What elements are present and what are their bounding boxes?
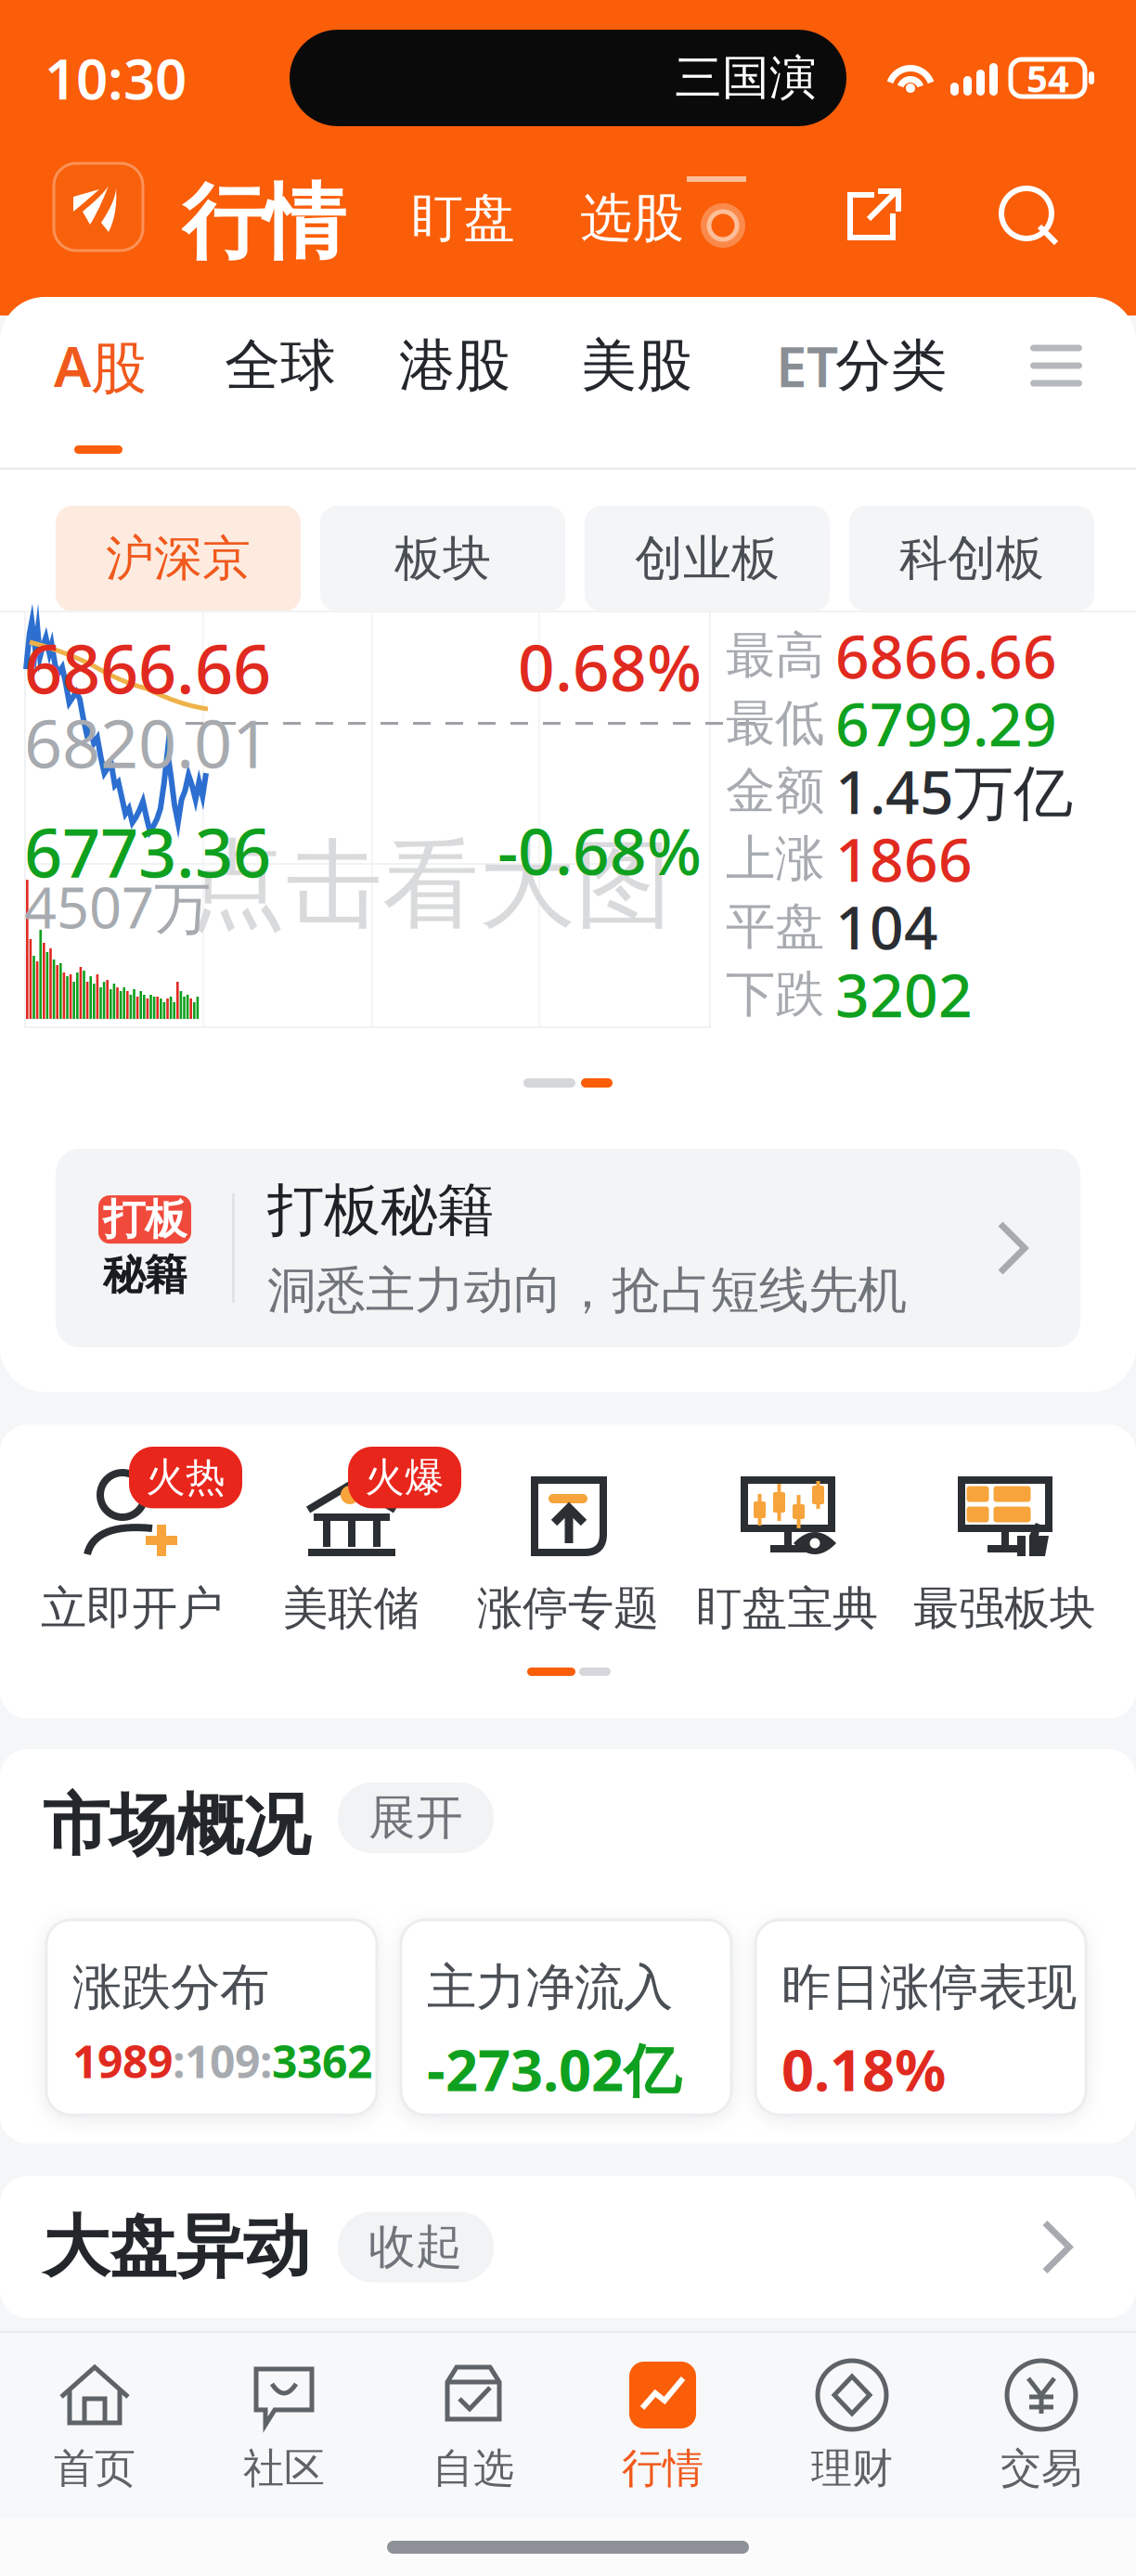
button[interactable]: 昨日涨停表现 [755, 1920, 1086, 2115]
button[interactable]: Share [841, 184, 908, 251]
button[interactable]: Search [995, 182, 1067, 254]
button[interactable]: 展开 [338, 1783, 494, 1853]
button[interactable]: 创业板 [585, 506, 830, 612]
staticText: 首页 [54, 2443, 136, 2493]
button[interactable]: 东方财富 [54, 163, 143, 251]
button[interactable]: 涨停专题 [461, 1463, 675, 1649]
staticText: 打板 [103, 1194, 187, 1245]
button[interactable]: 社区 [189, 2333, 379, 2518]
button[interactable]: 火爆 [244, 1463, 458, 1649]
button[interactable]: 自选 [379, 2333, 568, 2518]
button[interactable]: 盯盘宝典 [680, 1463, 894, 1649]
staticText: 展开 [368, 1789, 463, 1847]
button[interactable]: 火热 [25, 1463, 239, 1649]
button[interactable]: 最强板块 [897, 1463, 1111, 1649]
staticText: 选股 [580, 186, 684, 250]
staticText: 6773.36 [24, 807, 271, 896]
staticText: 火热 [146, 1453, 226, 1502]
staticText: 最强板块 [913, 1580, 1095, 1637]
staticText: 收起 [368, 2218, 463, 2276]
staticText: 社区 [243, 2443, 325, 2493]
staticText: 打板秘籍 [267, 1175, 494, 1245]
staticText: 盯盘 [411, 186, 515, 250]
button[interactable]: 行情 [568, 2333, 757, 2518]
staticText: 10:30 [45, 41, 187, 115]
button[interactable]: 主力净流入 [401, 1920, 731, 2115]
button[interactable]: 港股 [399, 297, 520, 434]
staticText: 行情 [622, 2443, 704, 2493]
staticText: : [260, 2031, 272, 2090]
staticText: 秘籍 [103, 1249, 187, 1301]
staticText: : [173, 2031, 185, 2090]
staticText: A股 [54, 328, 147, 403]
button[interactable]: 科创板 [849, 506, 1094, 612]
staticText: 分类 [835, 331, 947, 400]
staticText: 金额 [726, 761, 824, 821]
staticText: 下跌 [726, 964, 824, 1025]
staticText: 自选 [432, 2443, 514, 2493]
staticText: 109 [185, 2031, 260, 2090]
staticText: 涨跌分布 [72, 1957, 269, 2018]
button[interactable]: ET [776, 297, 845, 434]
staticText: 板块 [394, 529, 491, 588]
staticText: 全球 [225, 331, 336, 400]
staticText: 3202 [835, 955, 973, 1034]
staticText: 4507万 [24, 869, 211, 944]
staticText: 6799.29 [835, 684, 1057, 763]
staticText: 涨停专题 [477, 1580, 659, 1637]
staticText: 创业板 [635, 529, 780, 588]
staticText: 沪深京 [106, 529, 251, 588]
staticText: -0.68% [497, 807, 702, 893]
staticText: 3362 [272, 2031, 372, 2090]
staticText: 主力净流入 [427, 1957, 673, 2018]
staticText: 大盘异动 [43, 2206, 310, 2288]
staticText: 6820.01 [24, 698, 270, 787]
staticText: 市场概况 [43, 1784, 310, 1866]
staticText: 行情 [182, 173, 345, 273]
staticText: 点击看大图 [189, 826, 672, 944]
staticText: 最低 [726, 693, 824, 754]
staticText: ET [776, 329, 838, 403]
button[interactable]: 大盘异动 [0, 2176, 1136, 2318]
button[interactable]: A股 [50, 297, 199, 470]
button[interactable]: 打板 [56, 1149, 1080, 1347]
staticText: 立即开户 [41, 1580, 223, 1637]
staticText: 1.45万亿 [835, 752, 1073, 831]
staticText: 港股 [399, 331, 510, 400]
button[interactable]: 全球 [225, 297, 345, 434]
staticText: 火爆 [365, 1453, 445, 1502]
button[interactable]: More [1010, 297, 1103, 434]
staticText: 交易 [1000, 2443, 1082, 2493]
staticText: 0.68% [518, 624, 702, 709]
staticText: 1989 [72, 2031, 173, 2090]
staticText: 洞悉主力动向，抢占短线先机 [267, 1260, 907, 1321]
staticText: 1866 [835, 819, 973, 898]
button[interactable]: 沪深京 [56, 506, 301, 612]
staticText: 科创板 [899, 529, 1044, 588]
staticText: 三国演 [675, 49, 817, 107]
button[interactable]: 涨跌分布 [46, 1920, 377, 2115]
button[interactable]: 分类 [835, 297, 965, 434]
button[interactable]: 盯盘 [403, 178, 523, 258]
staticText: 54 [1026, 53, 1069, 103]
staticText: 上涨 [726, 828, 824, 889]
staticText: 理财 [811, 2443, 893, 2493]
staticText: 盯盘宝典 [696, 1580, 878, 1637]
button[interactable]: 选股 [572, 178, 692, 258]
staticText: 0.18% [781, 2031, 946, 2107]
button[interactable]: 交易 [947, 2333, 1136, 2518]
staticText: 平盘 [726, 896, 824, 957]
staticText: 美联储 [283, 1580, 419, 1637]
button[interactable]: 美股 [581, 297, 702, 434]
staticText: 昨日涨停表现 [781, 1957, 1077, 2018]
staticText: -273.02亿 [427, 2031, 680, 2107]
staticText: 104 [835, 887, 938, 966]
button[interactable]: 首页 [0, 2333, 189, 2518]
staticText: 6866.66 [24, 624, 271, 712]
button[interactable]: 理财 [757, 2333, 947, 2518]
staticText: 6866.66 [835, 616, 1057, 695]
staticText: 美股 [581, 331, 692, 400]
staticText: 最高 [726, 625, 824, 686]
button[interactable]: 板块 [320, 506, 565, 612]
